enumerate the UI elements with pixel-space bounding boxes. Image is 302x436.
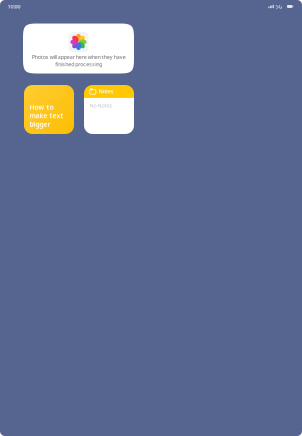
staticText: Notes xyxy=(99,88,114,95)
staticText: 10:00 xyxy=(7,3,20,10)
staticText: bigger xyxy=(29,120,50,129)
staticText: Photos will appear here when they have f… xyxy=(31,53,125,68)
staticText: No Notes xyxy=(89,102,112,109)
button[interactable]: How to xyxy=(24,85,74,134)
staticText: make text xyxy=(29,111,63,120)
staticText: 5G xyxy=(275,3,282,10)
button[interactable]: Notes xyxy=(84,85,134,134)
staticText: How to xyxy=(29,103,53,112)
